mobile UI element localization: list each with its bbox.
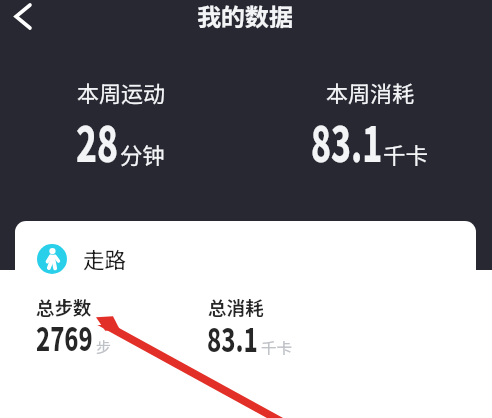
staticText: 83.1 [207, 314, 258, 362]
button[interactable] [202, 290, 362, 360]
staticText: 千卡 [383, 138, 429, 171]
staticText: 我的数据 [197, 0, 293, 33]
staticText: 28 [76, 107, 119, 176]
button[interactable] [30, 290, 190, 360]
staticText: 分钟 [120, 138, 166, 171]
staticText: 本周消耗 [326, 76, 415, 108]
staticText: 本周运动 [77, 76, 166, 108]
button[interactable]: Back [4, 0, 42, 33]
staticText: 步 [96, 336, 112, 358]
staticText: 83.1 [311, 107, 382, 176]
staticText: 走路 [83, 243, 127, 274]
staticText: 2769 [36, 312, 93, 361]
staticText: 总步数 [36, 294, 92, 321]
button[interactable]: Walking activity [37, 243, 127, 274]
button[interactable] [40, 68, 205, 178]
button[interactable] [288, 68, 453, 178]
staticText: 千卡 [261, 336, 293, 358]
staticText: 总消耗 [208, 294, 264, 321]
